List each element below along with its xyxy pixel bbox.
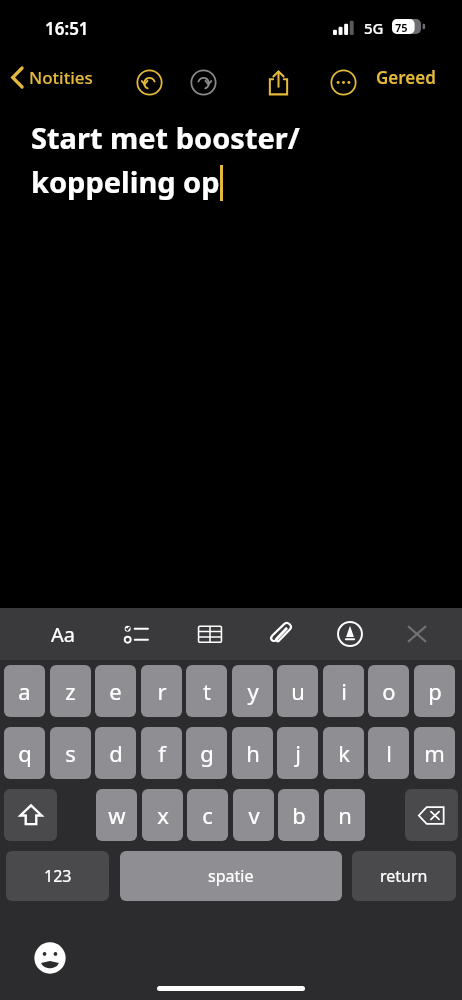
button[interactable]: u (277, 665, 318, 717)
button[interactable]: Backspace (405, 789, 458, 841)
staticText: l (386, 738, 392, 768)
button[interactable]: Redo (182, 61, 224, 103)
button[interactable]: d (95, 727, 136, 779)
staticText: f (158, 738, 166, 768)
staticText: koppeling op (31, 162, 220, 201)
button[interactable]: o (368, 665, 409, 717)
button[interactable]: Attach file (260, 613, 302, 655)
button[interactable]: Emoji (30, 938, 70, 978)
staticText: z (65, 676, 76, 706)
staticText: Start met booster/ (31, 118, 300, 157)
staticText: i (341, 676, 347, 706)
button[interactable]: Space (120, 851, 342, 901)
button[interactable]: w (96, 789, 137, 841)
button[interactable]: Share (257, 61, 299, 103)
staticText: Aa (51, 621, 75, 647)
button[interactable]: Numbers (6, 851, 109, 901)
button[interactable]: k (323, 727, 364, 779)
button[interactable]: m (414, 727, 455, 779)
button[interactable]: b (278, 789, 319, 841)
button[interactable]: i (323, 665, 364, 717)
staticText: n (338, 800, 352, 830)
button[interactable]: e (95, 665, 136, 717)
button[interactable]: z (50, 665, 91, 717)
button[interactable]: s (50, 727, 91, 779)
button[interactable]: Undo (128, 61, 170, 103)
staticText: x (157, 800, 169, 830)
button[interactable]: a (4, 665, 45, 717)
button[interactable]: p (414, 665, 455, 717)
button[interactable]: h (232, 727, 273, 779)
staticText: 5G (364, 18, 384, 38)
button[interactable]: n (324, 789, 365, 841)
staticText: 123 (44, 865, 72, 887)
staticText: p (428, 676, 442, 706)
button[interactable]: l (368, 727, 409, 779)
staticText: return (380, 865, 428, 887)
staticText: k (338, 738, 350, 768)
button[interactable]: t (186, 665, 227, 717)
staticText: j (295, 738, 301, 768)
button[interactable]: c (187, 789, 228, 841)
staticText: s (65, 738, 76, 768)
button[interactable]: Notities (6, 60, 99, 95)
staticText: u (291, 676, 305, 706)
button[interactable]: q (4, 727, 45, 779)
staticText: Notities (29, 66, 93, 89)
button[interactable]: Checklist (115, 613, 157, 655)
button[interactable]: More options (322, 61, 364, 103)
staticText: b (292, 800, 306, 830)
button[interactable]: Return (352, 851, 456, 901)
button[interactable]: y (232, 665, 273, 717)
staticText: Gereed (376, 66, 436, 89)
staticText: g (200, 738, 214, 768)
button[interactable]: Text format (42, 613, 84, 655)
staticText: 16:51 (45, 17, 89, 40)
button[interactable]: v (233, 789, 274, 841)
button[interactable]: Table (189, 613, 231, 655)
button[interactable]: r (141, 665, 182, 717)
button[interactable]: j (277, 727, 318, 779)
staticText: h (246, 738, 260, 768)
staticText: 75 (395, 20, 408, 35)
staticText: t (203, 676, 211, 706)
staticText: e (109, 676, 122, 706)
staticText: m (424, 738, 445, 768)
button[interactable]: x (142, 789, 183, 841)
button[interactable]: Shift (4, 789, 57, 841)
staticText: q (18, 738, 32, 768)
staticText: spatie (208, 865, 254, 887)
staticText: r (157, 676, 167, 706)
button[interactable]: Gereed (368, 60, 444, 95)
staticText: d (109, 738, 123, 768)
button[interactable]: f (141, 727, 182, 779)
staticText: y (247, 676, 259, 706)
staticText: v (248, 800, 260, 830)
staticText: w (108, 800, 126, 830)
button[interactable]: Markup (329, 613, 371, 655)
staticText: o (382, 676, 396, 706)
staticText: a (18, 676, 31, 706)
button[interactable]: Close keyboard (396, 613, 438, 655)
button[interactable]: g (186, 727, 227, 779)
staticText: c (202, 800, 213, 830)
